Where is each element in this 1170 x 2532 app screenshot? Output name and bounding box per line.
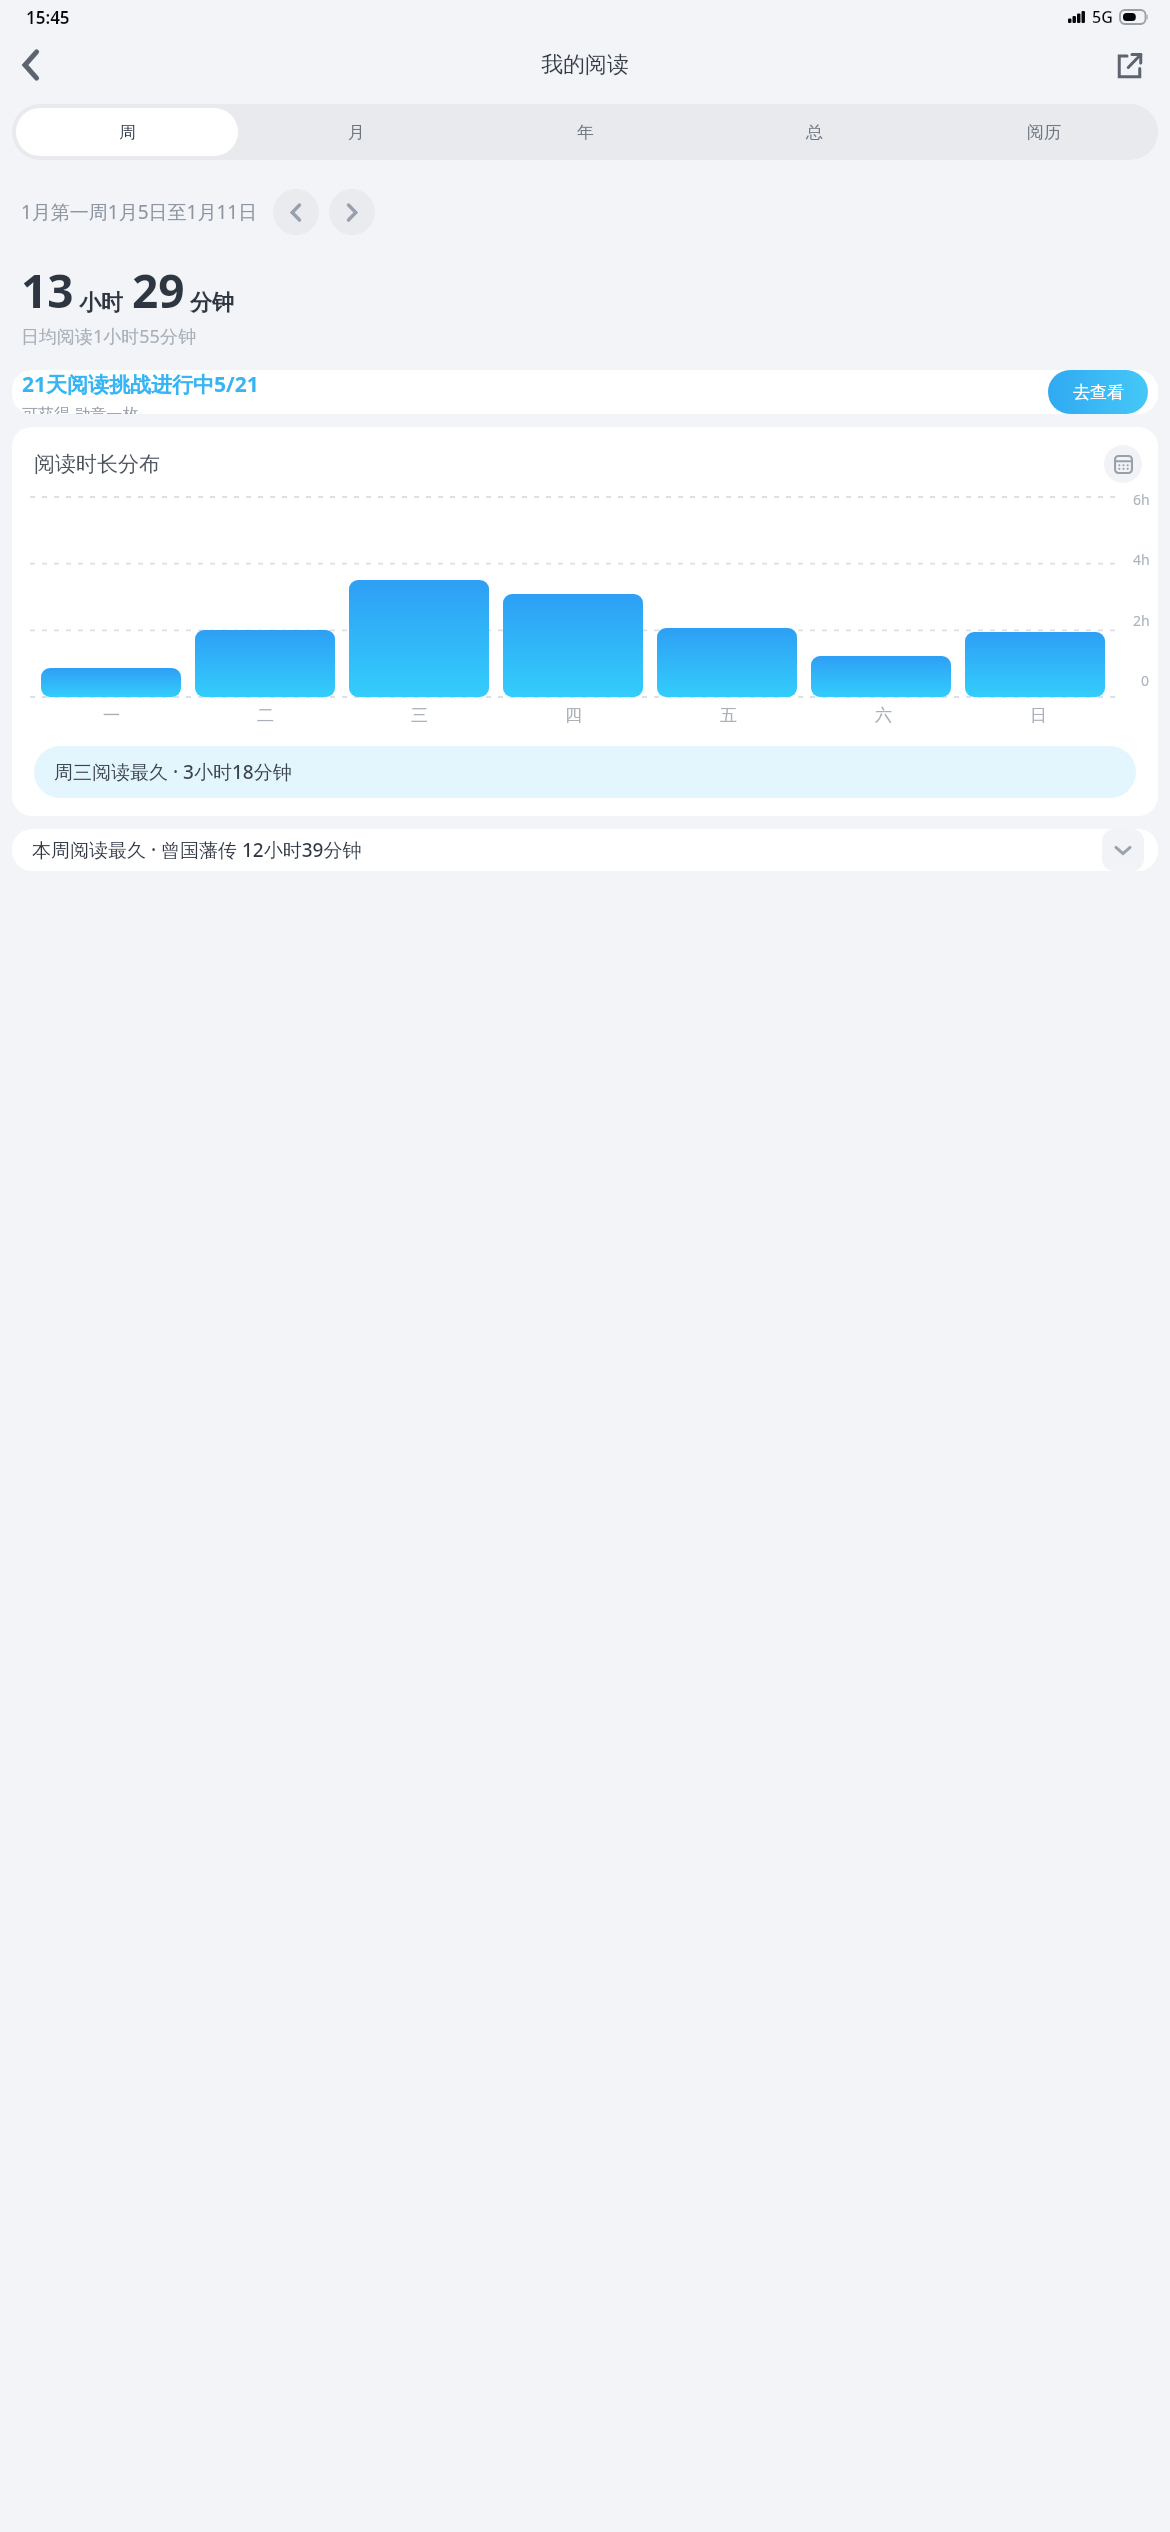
staticText: 29 [132,259,185,322]
staticText: 本周阅读最久 · 曾国藩传 12小时39分钟 [32,837,362,863]
button[interactable]: 21天阅读挑战进行中5/21 [12,370,1158,414]
staticText: 1月第一周1月5日至1月11日 [21,199,258,225]
staticText: 2h [1133,611,1150,630]
staticText: 年 [577,122,594,143]
staticText: 我的阅读 [541,51,629,79]
button[interactable]: 本周阅读最久 · 曾国藩传 12小时39分钟 [12,829,1158,871]
staticText: 5G [1092,6,1113,28]
staticText: 一 [103,705,120,726]
staticText: 小时 [79,289,123,317]
staticText: 三 [411,705,428,726]
staticText: 分钟 [190,289,234,317]
button[interactable]: 阅历 [933,108,1154,156]
button[interactable]: 总 [704,108,925,156]
staticText: 周 [119,122,136,143]
staticText: 21天阅读挑战进行中5/21 [22,370,259,399]
button[interactable]: Share [1102,38,1156,92]
staticText: 日 [1030,705,1047,726]
staticText: 阅读时长分布 [34,451,160,477]
button[interactable]: 周三阅读最久 · 3小时18分钟 [34,746,1136,798]
button[interactable]: Expand [1102,829,1144,871]
staticText: 五 [720,705,737,726]
staticText: 日均阅读1小时55分钟 [21,324,196,349]
staticText: 周三阅读最久 · 3小时18分钟 [54,759,292,785]
button[interactable]: Next week [329,189,375,235]
staticText: 六 [875,705,892,726]
button[interactable]: 年 [475,108,696,156]
button[interactable]: 月 [246,108,467,156]
staticText: 可获得 勋章一枚 [22,403,139,414]
staticText: 总 [806,122,823,143]
button[interactable]: Previous week [273,189,319,235]
staticText: 阅历 [1027,122,1061,143]
button[interactable]: Back [4,38,58,92]
staticText: 四 [565,705,582,726]
staticText: 二 [257,705,274,726]
staticText: 0 [1141,671,1150,690]
staticText: 去查看 [1073,382,1124,403]
staticText: 6h [1133,490,1150,509]
staticText: 4h [1133,550,1150,569]
staticText: 15:45 [26,6,70,29]
staticText: 13 [21,259,74,322]
button[interactable]: 周 [16,108,238,156]
button[interactable]: 去查看 [1048,370,1148,414]
staticText: 月 [348,122,365,143]
button[interactable]: Calendar [1104,445,1142,483]
